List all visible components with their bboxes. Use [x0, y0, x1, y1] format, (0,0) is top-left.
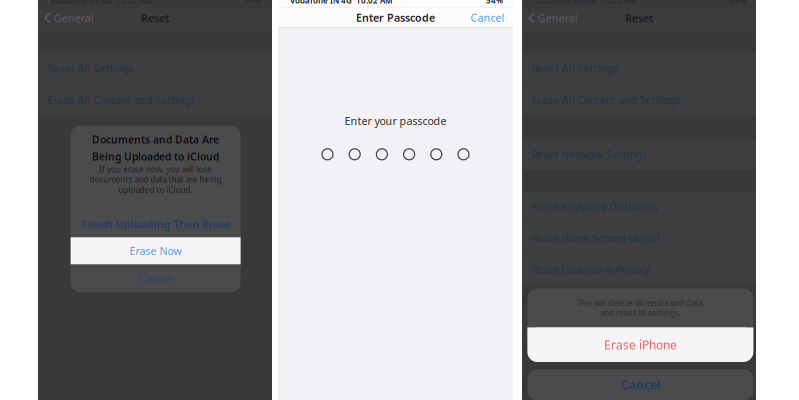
staticText: If you erase now, you will lose	[99, 164, 212, 175]
staticText: Reset Location & Privacy	[531, 263, 649, 276]
button[interactable]: Reset Location & Privacy	[522, 254, 756, 285]
staticText: Reset	[625, 11, 653, 25]
staticText: Reset Keyboard Dictionary	[531, 200, 658, 213]
staticText: Vodafone IN 4G 10:02 AM	[534, 0, 636, 6]
staticText: Being Uploaded to iCloud	[92, 150, 219, 163]
staticText: Reset Home Screen Layout	[531, 231, 660, 245]
staticText: 54%	[729, 0, 746, 6]
staticText: General	[538, 11, 578, 25]
staticText: Documents and Data Are	[92, 133, 219, 146]
staticText: Vodafone IN 4G 10:02 AM	[50, 0, 152, 6]
staticText: Cancel	[139, 271, 173, 285]
staticText: General	[54, 11, 94, 25]
staticText: Vodafone IN 4G 10:02 AM	[290, 0, 392, 6]
staticText: Reset All Settings	[531, 62, 617, 75]
staticText: Enter Passcode	[356, 11, 435, 25]
button[interactable]: General	[38, 8, 94, 28]
staticText: Erase All Content and Settings	[47, 93, 195, 107]
button[interactable]: Reset All Settings	[522, 53, 756, 84]
button[interactable]: Erase All Content and Settings	[522, 85, 756, 116]
button[interactable]: Cancel	[471, 8, 513, 27]
staticText: Erase Now	[130, 244, 182, 258]
staticText: and reset all settings.	[600, 308, 681, 318]
button[interactable]: Reset Home Screen Layout	[522, 223, 756, 254]
staticText: This will delete all media and data,	[577, 298, 704, 308]
staticText: 54%	[245, 0, 262, 6]
staticText: Reset	[141, 11, 169, 25]
button[interactable]: Erase Now	[71, 237, 241, 264]
staticText: Reset All Settings	[47, 62, 133, 75]
button[interactable]: Finish Uploading Then Erase	[71, 211, 241, 237]
button[interactable]: Reset All Settings	[38, 53, 272, 84]
button[interactable]: Reset Keyboard Dictionary	[522, 191, 756, 222]
staticText: Cancel	[471, 11, 505, 25]
button[interactable]: Reset Network Settings	[522, 139, 756, 170]
staticText: Enter your passcode	[344, 114, 446, 128]
staticText: uploaded to iCloud.	[119, 185, 193, 195]
button[interactable]: Erase All Content and Settings	[38, 85, 272, 116]
button[interactable]: General	[522, 8, 578, 28]
staticText: documents and data that are being	[90, 174, 222, 185]
button[interactable]: Cancel	[527, 369, 753, 400]
button[interactable]: Cancel	[71, 264, 241, 292]
staticText: 54%	[486, 0, 503, 6]
staticText: Reset Network Settings	[531, 148, 646, 161]
staticText: Erase iPhone	[604, 337, 677, 353]
staticText: Cancel	[621, 377, 660, 393]
staticText: Finish Uploading Then Erase	[82, 217, 230, 231]
staticText: Erase All Content and Settings	[531, 93, 679, 107]
button[interactable]: Erase iPhone	[527, 327, 753, 362]
